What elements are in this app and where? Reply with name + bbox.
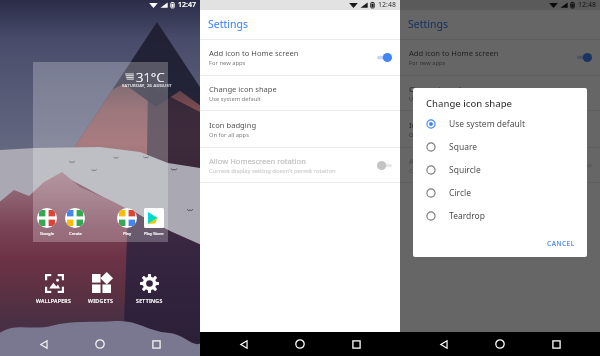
staticText: WALLPAPERS: [36, 297, 72, 304]
staticText: 12:48: [578, 0, 596, 10]
staticText: On for all apps: [209, 131, 249, 139]
staticText: Current display setting doesn't permit r…: [409, 167, 536, 175]
button[interactable]: Recents: [344, 332, 368, 356]
button[interactable]: Allow Homescreen rotation: [577, 160, 592, 171]
button[interactable]: Home: [88, 332, 112, 356]
button[interactable]: Back: [32, 332, 56, 356]
staticText: Use system default: [409, 95, 461, 103]
button[interactable]: CANCEL: [541, 235, 581, 252]
staticText: Create: [69, 231, 82, 237]
staticText: SATURDAY, 26 AUGUST: [122, 83, 172, 89]
staticText: Teardrop: [449, 210, 485, 222]
button[interactable]: Home: [488, 332, 512, 356]
button[interactable]: Allow Homescreen rotation: [200, 148, 400, 182]
staticText: Change icon shape: [209, 84, 277, 94]
staticText: SETTINGS: [136, 297, 163, 304]
staticText: Change icon shape: [409, 84, 477, 94]
staticText: 12:47: [178, 0, 196, 10]
button[interactable]: Play: [117, 208, 137, 237]
staticText: Squircle: [449, 164, 481, 176]
staticText: Change icon shape: [426, 97, 513, 110]
button[interactable]: Use system default: [413, 112, 587, 135]
button[interactable]: Allow Homescreen rotation: [377, 160, 392, 171]
button[interactable]: Squircle: [413, 158, 587, 181]
staticText: Use system default: [449, 118, 526, 130]
staticText: CANCEL: [547, 239, 575, 248]
button[interactable]: Recents: [144, 332, 168, 356]
staticText: Allow Homescreen rotation: [409, 156, 506, 166]
button[interactable]: Icon badging: [400, 111, 600, 147]
staticText: Add icon to Home screen: [409, 48, 499, 58]
button[interactable]: Google: [37, 208, 57, 237]
button[interactable]: WIDGETS: [86, 272, 116, 306]
button[interactable]: Teardrop: [413, 204, 587, 227]
staticText: Icon badging: [409, 120, 457, 130]
staticText: Settings: [408, 17, 448, 31]
button[interactable]: Add icon to Home screen: [400, 40, 600, 75]
staticText: Use system default: [209, 95, 261, 103]
staticText: Allow Homescreen rotation: [209, 156, 306, 166]
staticText: For new apps: [409, 59, 446, 67]
staticText: Play: [123, 231, 132, 237]
button[interactable]: Recents: [544, 332, 568, 356]
button[interactable]: Back: [432, 332, 456, 356]
button[interactable]: WALLPAPERS: [34, 272, 74, 306]
staticText: Circle: [449, 187, 471, 199]
staticText: Play Store: [144, 231, 164, 237]
button[interactable]: Add icon to Home screen: [200, 40, 400, 75]
button[interactable]: Circle: [413, 181, 587, 204]
button[interactable]: Back: [432, 332, 456, 356]
button[interactable]: Change icon shape: [200, 76, 400, 110]
staticText: 31°C: [136, 68, 165, 86]
button[interactable]: Add icon to Home screen: [577, 52, 592, 63]
staticText: Settings: [208, 17, 248, 31]
staticText: Icon badging: [209, 120, 257, 130]
staticText: For new apps: [209, 59, 246, 67]
staticText: Add icon to Home screen: [209, 48, 299, 58]
staticText: Current display setting doesn't permit r…: [209, 167, 336, 175]
button[interactable]: Add icon to Home screen: [377, 52, 392, 63]
button[interactable]: Square: [413, 135, 587, 158]
staticText: Google: [40, 231, 55, 237]
button[interactable]: Icon badging: [200, 111, 400, 147]
staticText: 12:48: [378, 0, 396, 10]
button[interactable]: Recents: [544, 332, 568, 356]
button[interactable]: Create: [65, 208, 85, 237]
button[interactable]: SETTINGS: [134, 272, 165, 306]
staticText: Square: [449, 141, 478, 153]
button[interactable]: Allow Homescreen rotation: [400, 148, 600, 182]
staticText: On for all apps: [409, 131, 449, 139]
button[interactable]: Play Store: [144, 208, 164, 237]
button[interactable]: Back: [232, 332, 256, 356]
button[interactable]: Change icon shape: [400, 76, 600, 110]
staticText: WIDGETS: [88, 297, 114, 304]
button[interactable]: Home: [288, 332, 312, 356]
button[interactable]: Home: [488, 332, 512, 356]
